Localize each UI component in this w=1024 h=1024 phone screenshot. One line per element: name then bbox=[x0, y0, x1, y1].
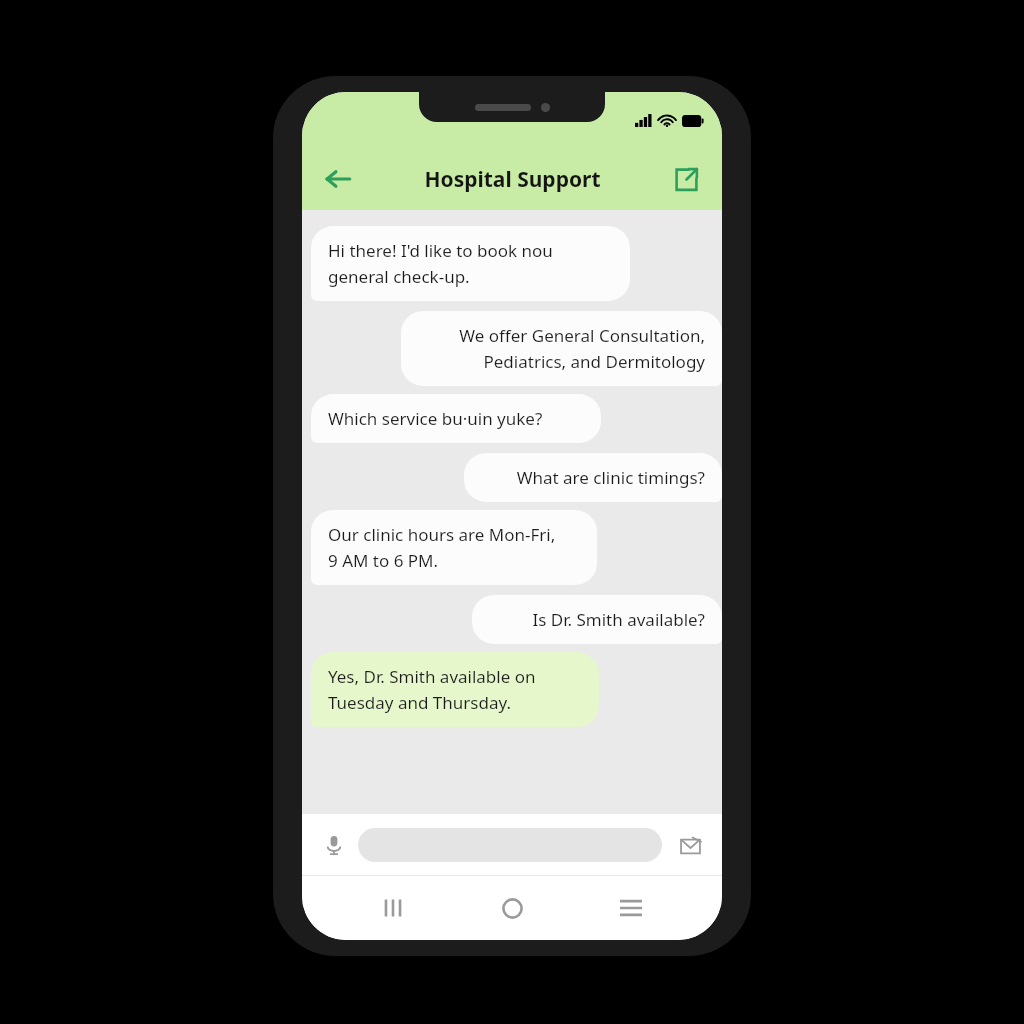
button[interactable] bbox=[358, 828, 662, 862]
staticText: Is Dr. Smith available? bbox=[489, 608, 705, 631]
staticText: Hi there! I'd like to book nou general c… bbox=[328, 239, 613, 288]
staticText: We offer General Consultation, Pediatric… bbox=[418, 324, 705, 373]
button[interactable]: Menu bbox=[603, 880, 659, 936]
button[interactable]: Which service bu·uin yuke? bbox=[311, 394, 601, 443]
staticText: Our clinic hours are Mon-Fri, 9 AM to 6 … bbox=[328, 523, 580, 572]
staticText: What are clinic timings? bbox=[481, 466, 705, 489]
staticText: Hospital Support bbox=[424, 165, 601, 194]
staticText: Yes, Dr. Smith available on Tuesday and … bbox=[328, 665, 582, 714]
button[interactable]: Is Dr. Smith available? bbox=[472, 595, 722, 644]
button[interactable]: Our clinic hours are Mon-Fri, 9 AM to 6 … bbox=[311, 510, 597, 585]
button[interactable]: Home bbox=[484, 880, 540, 936]
button[interactable]: We offer General Consultation, Pediatric… bbox=[401, 311, 722, 386]
button[interactable]: Send bbox=[672, 827, 708, 863]
button[interactable]: What are clinic timings? bbox=[464, 453, 722, 502]
button[interactable]: Back bbox=[316, 157, 360, 201]
button[interactable]: Hi there! I'd like to book nou general c… bbox=[311, 226, 630, 301]
button[interactable]: Yes, Dr. Smith available on Tuesday and … bbox=[311, 652, 599, 727]
button[interactable]: Recents bbox=[365, 880, 421, 936]
button[interactable]: Open in new bbox=[664, 157, 708, 201]
staticText: Which service bu·uin yuke? bbox=[328, 407, 584, 430]
button[interactable]: Voice input bbox=[316, 827, 352, 863]
